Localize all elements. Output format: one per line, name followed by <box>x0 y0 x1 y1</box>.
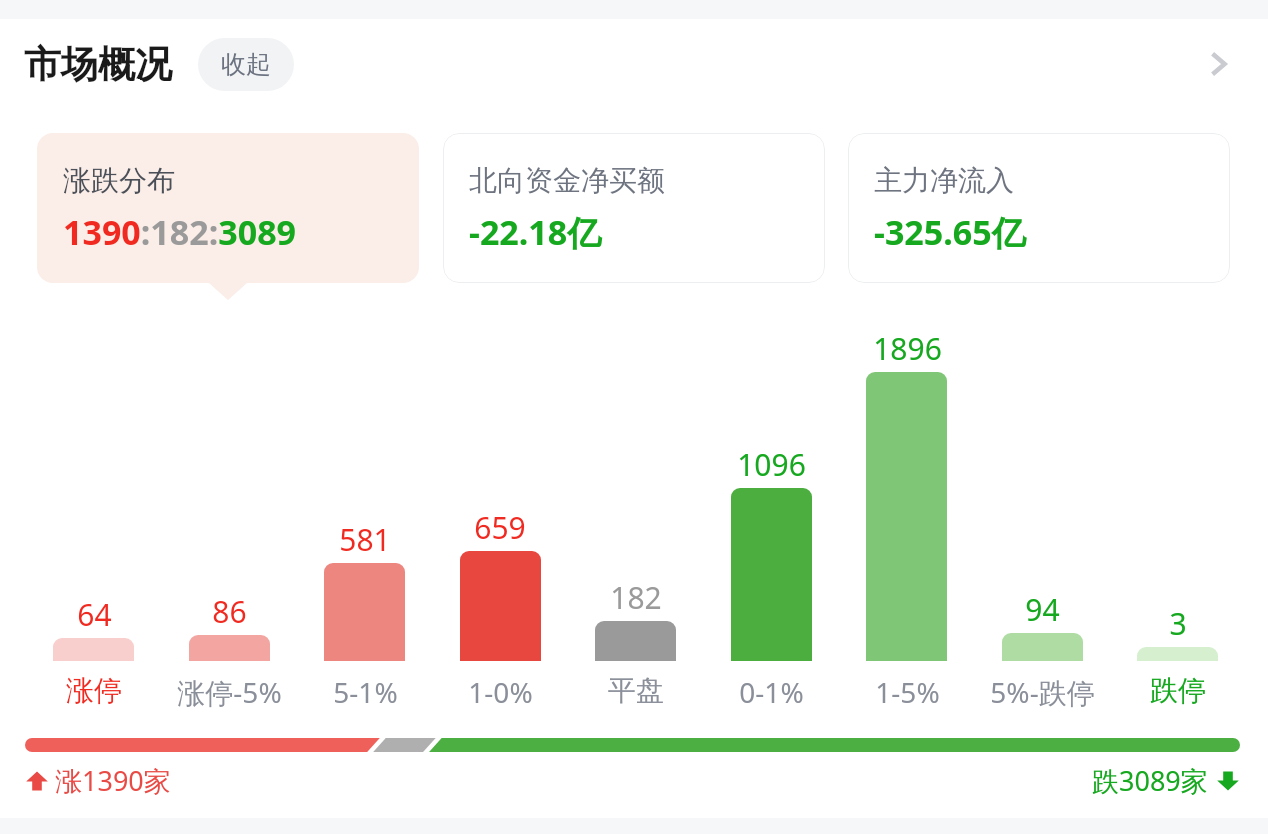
staticText: 涨跌分布 <box>63 163 175 198</box>
staticText: 涨停 <box>66 673 122 708</box>
staticText: 86 <box>212 591 247 632</box>
staticText: 跌3089家 <box>1092 762 1208 799</box>
staticText: 收起 <box>221 49 271 80</box>
button[interactable]: 主力净流入 <box>848 133 1230 283</box>
staticText: 1896 <box>873 328 942 369</box>
button[interactable]: 收起 <box>198 38 294 91</box>
staticText: 北向资金净买额 <box>469 163 665 198</box>
button[interactable]: 涨跌分布 <box>37 133 419 283</box>
staticText: 1-5% <box>875 673 940 711</box>
staticText: 1-0% <box>468 673 533 711</box>
staticText: 1390:182:3089 <box>63 209 297 255</box>
staticText: 64 <box>77 594 112 635</box>
staticText: -22.18亿 <box>469 209 602 255</box>
staticText: 跌停 <box>1150 673 1206 708</box>
button[interactable]: 更多 <box>1188 34 1248 94</box>
staticText: 581 <box>339 519 391 560</box>
button[interactable]: 北向资金净买额 <box>443 133 825 283</box>
staticText: 市场概况 <box>24 41 172 88</box>
staticText: 5-1% <box>333 673 398 711</box>
staticText: 3 <box>1169 603 1187 644</box>
staticText: 94 <box>1025 589 1060 630</box>
staticText: 平盘 <box>608 673 664 708</box>
staticText: 涨停-5% <box>177 673 282 711</box>
staticText: 主力净流入 <box>874 163 1014 198</box>
staticText: 182 <box>610 577 662 618</box>
staticText: 5%-跌停 <box>990 673 1095 711</box>
staticText: -325.65亿 <box>874 209 1026 255</box>
staticText: 0-1% <box>739 673 804 711</box>
staticText: 1096 <box>737 444 806 485</box>
staticText: 659 <box>474 507 526 548</box>
staticText: 涨1390家 <box>55 762 171 799</box>
